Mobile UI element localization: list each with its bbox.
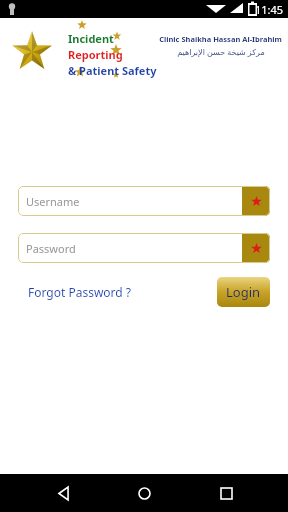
button[interactable]: Login: [217, 277, 270, 307]
staticText: & Patient Safety: [68, 63, 157, 78]
button[interactable]: Recent apps: [207, 474, 245, 512]
button[interactable]: Forgot Password ?: [18, 279, 142, 305]
button[interactable]: Password: [18, 233, 270, 263]
staticText: 11:45: [255, 2, 284, 17]
staticText: Incident: [68, 31, 114, 46]
staticText: Forgot Password ?: [28, 284, 132, 300]
button[interactable]: Home: [125, 474, 163, 512]
button[interactable]: Back: [44, 474, 82, 512]
staticText: Username: [26, 194, 80, 209]
staticText: Login: [226, 283, 261, 301]
staticText: مركز شيخة حسن الإبراهيم: [177, 46, 265, 57]
button[interactable]: Username: [18, 186, 270, 216]
staticText: Clinic Shaikha Hassan Al-Ibrahim: [159, 34, 282, 44]
staticText: Password: [26, 241, 76, 256]
staticText: Reporting: [68, 47, 123, 62]
